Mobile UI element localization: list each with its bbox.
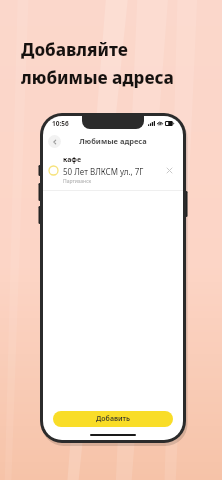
staticText: 50 Лет ВЛКСМ ул., 7Г xyxy=(63,166,144,177)
staticText: Добавляйте xyxy=(21,38,128,61)
staticText: любимые адреса xyxy=(21,66,174,89)
staticText: Партизанск xyxy=(63,178,92,185)
button[interactable]: Добавить xyxy=(53,411,173,427)
button[interactable]: кафе xyxy=(43,152,183,190)
staticText: Добавить xyxy=(96,414,131,424)
button[interactable]: Назад xyxy=(48,135,61,148)
button[interactable]: Удалить адрес xyxy=(163,164,175,176)
staticText: кафе xyxy=(63,155,82,165)
staticText: Любимые адреса xyxy=(79,136,147,146)
staticText: 10:56 xyxy=(52,119,69,128)
